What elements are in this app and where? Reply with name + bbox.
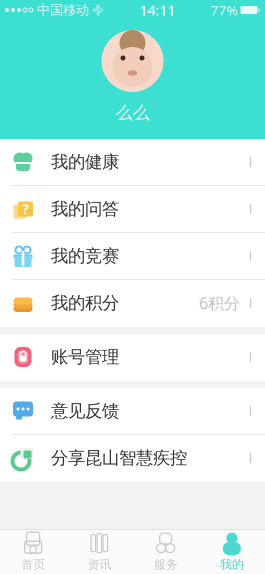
- staticText: 中国移动: [37, 2, 89, 18]
- staticText: ?: [22, 200, 28, 218]
- button[interactable]: 服务: [132, 530, 199, 574]
- staticText: 我的健康: [51, 151, 119, 173]
- staticText: 我的: [220, 557, 244, 572]
- button[interactable]: 资讯: [66, 530, 132, 574]
- staticText: 首页: [21, 557, 45, 572]
- staticText: 我的问答: [51, 198, 119, 220]
- button[interactable]: 首页: [0, 530, 66, 574]
- button[interactable]: ?: [0, 186, 265, 233]
- button[interactable]: 意见反馈: [0, 388, 265, 435]
- staticText: 么么: [115, 102, 149, 123]
- button[interactable]: 我的竞赛: [0, 233, 265, 280]
- staticText: 令: [92, 3, 104, 17]
- staticText: 服务: [154, 557, 178, 572]
- staticText: 意见反馈: [51, 400, 119, 422]
- staticText: 6积分: [199, 292, 240, 314]
- button[interactable]: 我的: [199, 530, 265, 574]
- button[interactable]: 分享昆山智慧疾控: [0, 435, 265, 482]
- staticText: 我的积分: [51, 292, 119, 314]
- staticText: 14:11: [139, 0, 175, 20]
- button[interactable]: 我的健康: [0, 139, 265, 186]
- staticText: 77%: [210, 1, 237, 19]
- staticText: 我的竞赛: [51, 245, 119, 267]
- button[interactable]: 我的积分: [0, 280, 265, 327]
- button[interactable]: 账号管理: [0, 334, 265, 381]
- staticText: 资讯: [87, 557, 111, 572]
- staticText: 分享昆山智慧疾控: [51, 447, 187, 469]
- staticText: 账号管理: [51, 346, 119, 368]
